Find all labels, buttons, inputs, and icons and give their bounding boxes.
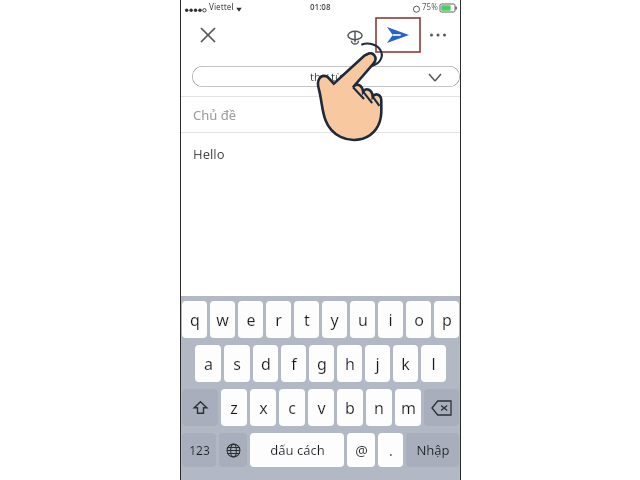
button[interactable]: e xyxy=(238,301,263,338)
button[interactable]: c xyxy=(279,389,305,426)
button[interactable]: v xyxy=(308,389,334,426)
button[interactable]: x xyxy=(250,389,276,426)
button[interactable]: i xyxy=(378,301,403,338)
button[interactable]: o xyxy=(406,301,431,338)
button[interactable]: thư từ xyxy=(192,66,460,87)
staticText: h xyxy=(345,353,355,375)
staticText: . xyxy=(389,441,393,460)
staticText: Chủ đề xyxy=(193,106,237,124)
button[interactable]: b xyxy=(337,389,363,426)
staticText: a xyxy=(204,353,213,375)
staticText: y xyxy=(330,309,339,331)
button[interactable]: m xyxy=(395,389,421,426)
button[interactable]: t xyxy=(294,301,319,338)
button[interactable]: Attach xyxy=(340,20,370,50)
staticText: thư từ xyxy=(310,69,343,84)
staticText: 75% xyxy=(422,1,438,12)
staticText: l xyxy=(431,353,436,375)
staticText: 01:08 xyxy=(310,1,331,12)
staticText: r xyxy=(275,309,282,331)
button[interactable]: s xyxy=(224,345,250,382)
staticText: j xyxy=(375,353,380,375)
button[interactable]: More options xyxy=(424,21,452,49)
staticText: e xyxy=(246,309,256,331)
staticText: c xyxy=(288,397,296,419)
staticText: Hello xyxy=(193,145,225,163)
button[interactable]: a xyxy=(195,345,221,382)
staticText: dấu cách xyxy=(270,441,325,459)
button[interactable]: Send xyxy=(376,18,420,52)
staticText: m xyxy=(401,397,416,419)
button[interactable]: q xyxy=(182,301,207,338)
button[interactable]: p xyxy=(434,301,459,338)
button[interactable]: h xyxy=(337,345,362,382)
button[interactable]: k xyxy=(393,345,418,382)
staticText: f xyxy=(291,353,297,375)
staticText: v xyxy=(317,397,326,419)
staticText: s xyxy=(233,353,241,375)
button[interactable]: dấu cách xyxy=(250,433,344,467)
staticText: z xyxy=(230,397,238,419)
staticText: p xyxy=(442,309,452,331)
staticText: u xyxy=(358,309,368,331)
button[interactable]: . xyxy=(378,433,403,467)
staticText: t xyxy=(304,309,310,331)
button[interactable]: g xyxy=(309,345,334,382)
button[interactable]: Change keyboard xyxy=(219,433,247,467)
button[interactable]: Shift xyxy=(182,389,218,426)
button[interactable]: Expand recipients xyxy=(422,64,448,90)
button[interactable]: Backspace xyxy=(424,389,459,426)
staticText: g xyxy=(317,353,327,375)
staticText: n xyxy=(374,397,384,419)
staticText: b xyxy=(345,397,355,419)
staticText: @ xyxy=(355,441,368,460)
button[interactable]: r xyxy=(266,301,291,338)
button[interactable]: w xyxy=(210,301,235,338)
button[interactable]: j xyxy=(365,345,390,382)
staticText: o xyxy=(414,309,424,331)
button[interactable]: y xyxy=(322,301,347,338)
button[interactable]: 123 xyxy=(182,433,216,467)
staticText: Nhập xyxy=(416,441,450,459)
button[interactable]: @ xyxy=(347,433,375,467)
button[interactable]: l xyxy=(421,345,446,382)
staticText: x xyxy=(259,397,268,419)
staticText: d xyxy=(261,353,271,375)
staticText: k xyxy=(401,353,410,375)
button[interactable]: f xyxy=(281,345,306,382)
button[interactable]: Chủ đề xyxy=(181,97,460,133)
button[interactable]: n xyxy=(366,389,392,426)
button[interactable]: Close xyxy=(193,20,223,50)
button[interactable]: z xyxy=(221,389,247,426)
staticText: Viettel xyxy=(209,1,234,12)
staticText: 123 xyxy=(189,442,210,458)
button[interactable]: u xyxy=(350,301,375,338)
button[interactable]: Hello xyxy=(181,133,460,296)
button[interactable]: Nhập xyxy=(406,433,459,467)
button[interactable]: d xyxy=(253,345,278,382)
staticText: i xyxy=(388,309,393,331)
staticText: q xyxy=(190,309,200,331)
staticText: w xyxy=(216,309,229,331)
